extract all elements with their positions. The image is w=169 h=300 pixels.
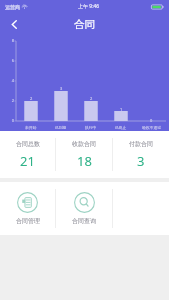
staticText: 21 [20, 152, 35, 170]
staticText: 2 [11, 98, 14, 103]
staticText: 18 [77, 152, 92, 170]
staticText: 合同管理 [16, 217, 40, 225]
staticText: 2 [90, 96, 93, 101]
staticText: 0 [150, 118, 153, 123]
staticText: 4 [11, 78, 14, 83]
staticText: 6 [11, 58, 14, 63]
staticText: 已终止 [115, 125, 127, 130]
staticText: 付款合同 [129, 140, 153, 148]
staticText: 2 [30, 96, 33, 101]
staticText: 收款合同 [72, 140, 96, 148]
button[interactable]: Contract search [56, 182, 112, 235]
staticText: 0 [11, 118, 14, 123]
staticText: 合同总数 [16, 140, 40, 148]
staticText: 合同查询 [72, 217, 96, 225]
staticText: 执行中 [85, 125, 97, 130]
staticText: 上午 9:46 [78, 3, 100, 10]
staticText: 8 [11, 38, 14, 43]
staticText: 运营商 [5, 4, 20, 10]
button[interactable]: 收款合同 [56, 131, 112, 178]
staticText: 未开始 [25, 125, 37, 130]
button[interactable]: 付款合同 [113, 131, 169, 178]
staticText: 1 [120, 107, 123, 112]
staticText: 3 [60, 86, 63, 91]
staticText: 合同 [74, 18, 95, 31]
staticText: 3 [137, 152, 145, 170]
button[interactable]: 合同总数 [0, 131, 55, 178]
staticText: 验收不通过 [142, 125, 161, 130]
button[interactable]: Contract management [0, 182, 55, 235]
staticText: 已到期 [55, 125, 67, 130]
button[interactable]: Back [0, 13, 28, 36]
